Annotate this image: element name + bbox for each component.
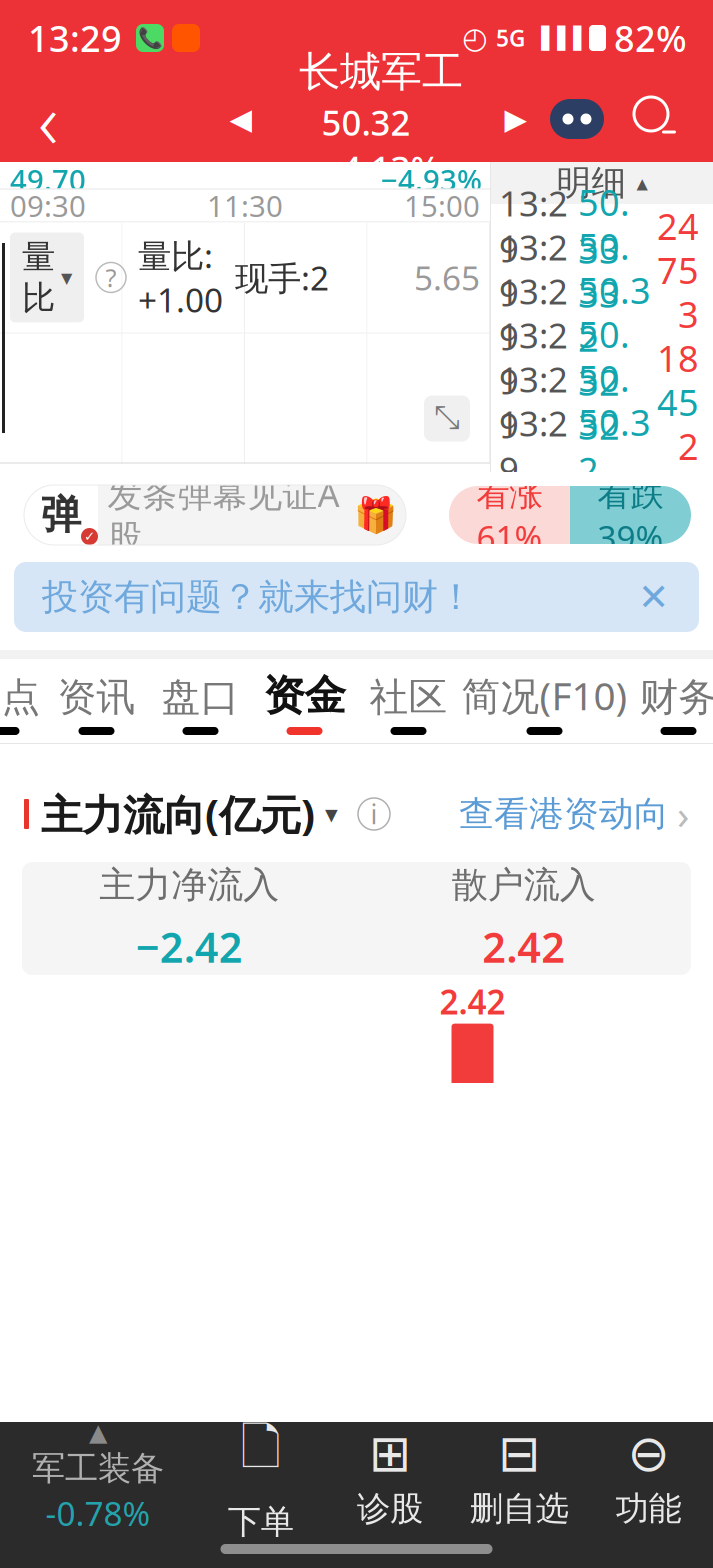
staticText: ◆	[504, 1412, 525, 1442]
button[interactable]: AI assistant	[541, 76, 613, 162]
staticText: ▾	[61, 265, 72, 290]
staticText: 50.32 −4.13%	[321, 99, 440, 191]
button[interactable]: 弹	[24, 485, 406, 545]
staticText: ▾	[325, 800, 338, 828]
staticText: i	[370, 796, 377, 832]
staticText: 75	[657, 246, 699, 294]
staticText: 社区	[369, 673, 447, 721]
staticText: 近20日24.87%主力获利，平均持仓成本51.58元，平均盈	[39, 1476, 673, 1568]
staticText: 散户流入	[452, 863, 596, 907]
button[interactable]: 投资有问题？就来找问财！	[0, 558, 713, 650]
button[interactable]: 看涨 61%	[449, 486, 570, 544]
button[interactable]: ⊞	[325, 1424, 454, 1530]
staticText: ⊖	[627, 1425, 669, 1482]
staticText: 量比	[22, 236, 55, 318]
staticText: 下单	[228, 1501, 294, 1542]
button[interactable]: Next stock	[491, 76, 541, 162]
staticText: ▐▐▐	[533, 26, 581, 50]
staticText: 50.33	[578, 222, 630, 318]
staticText: i	[443, 1409, 450, 1445]
staticText: 资讯	[57, 673, 135, 721]
button[interactable]: 主力流向(亿元)	[29, 787, 338, 841]
button[interactable]: 查看港资动向	[459, 787, 713, 840]
staticText: ◴	[462, 21, 488, 55]
staticText: 49.70	[10, 160, 86, 199]
staticText: ›	[677, 787, 689, 840]
button[interactable]: ⊖	[584, 1424, 713, 1530]
staticText: 军工装备	[32, 1448, 164, 1489]
staticText: -0.78%	[45, 1491, 150, 1535]
staticText: 2	[678, 422, 699, 470]
button[interactable]: Previous stock	[211, 76, 271, 162]
staticText: 🎁	[353, 495, 396, 535]
staticText: ▴	[636, 170, 647, 196]
button[interactable]: Info	[431, 1411, 463, 1443]
staticText: ‹	[38, 68, 58, 170]
button[interactable]: 🗋	[196, 1424, 325, 1530]
staticText: 18	[657, 334, 699, 382]
staticText: 2.42	[439, 979, 505, 1024]
staticText: 50.32	[578, 398, 651, 494]
staticText: 现手:2	[235, 255, 329, 300]
staticText: 50.32	[578, 354, 630, 450]
button[interactable]: 看跌 39%	[570, 486, 691, 544]
staticText: 看点	[0, 673, 40, 721]
staticText: 5G	[496, 23, 525, 53]
button[interactable]: Info	[358, 798, 390, 830]
staticText: 主力流向(亿元)	[41, 787, 315, 841]
button[interactable]: 盘口	[148, 659, 252, 743]
staticText: ⤡	[434, 403, 460, 434]
staticText: ?	[105, 261, 116, 294]
staticText: 13:29	[28, 14, 122, 62]
staticText: 2.42	[482, 919, 565, 974]
button[interactable]: ◆	[488, 1401, 689, 1453]
staticText: 🗋	[240, 1412, 281, 1495]
staticText: 近20日大单流向及主力信号	[41, 1374, 417, 1480]
staticText: 资金课堂	[533, 1406, 673, 1448]
staticText: 📞	[137, 27, 162, 49]
button[interactable]: Back	[0, 76, 96, 162]
staticText: 5.65	[414, 255, 480, 300]
button[interactable]: 社区	[356, 659, 460, 743]
staticText: 15:00	[404, 186, 480, 225]
button[interactable]: 量比	[10, 232, 84, 322]
staticText: ▲	[89, 1419, 107, 1446]
staticText: 50.33	[578, 178, 630, 274]
staticText: 11:30	[207, 186, 283, 225]
staticText: ✓	[84, 529, 95, 544]
staticText: 45	[657, 378, 699, 426]
staticText: −2.42	[136, 919, 243, 974]
button[interactable]: 明细	[491, 162, 713, 204]
staticText: 长城军工	[299, 47, 463, 97]
button[interactable]: ▲	[0, 1424, 196, 1530]
staticText: 查看港资动向	[459, 793, 669, 835]
staticText: ✕	[638, 576, 669, 618]
button[interactable]: Search	[613, 76, 699, 162]
staticText: 24	[657, 202, 699, 250]
staticText: 看跌 39%	[597, 471, 663, 559]
staticText: 3	[678, 290, 699, 338]
button[interactable]: 简况(F10)	[460, 659, 628, 743]
staticText: 13:29	[499, 224, 568, 316]
staticText: 财务	[639, 673, 713, 721]
staticText: 功能	[615, 1488, 681, 1529]
button[interactable]: Help	[96, 262, 126, 292]
button[interactable]: ⊟	[454, 1424, 584, 1530]
staticText: 09:30	[10, 186, 86, 225]
staticText: 50.32	[578, 310, 630, 406]
staticText: ⊟	[498, 1425, 540, 1482]
staticText: 13:29	[499, 268, 568, 360]
staticText: 主力净流入	[99, 863, 279, 907]
staticText: ◀	[229, 102, 252, 136]
staticText: 82%	[614, 14, 687, 62]
button[interactable]: 看点	[0, 659, 44, 743]
button[interactable]: 资金	[252, 659, 356, 743]
button[interactable]: 财务	[628, 659, 713, 743]
staticText: 简况(F10)	[461, 670, 627, 721]
button[interactable]: Fullscreen chart	[424, 395, 470, 441]
button[interactable]: 资讯	[44, 659, 148, 743]
